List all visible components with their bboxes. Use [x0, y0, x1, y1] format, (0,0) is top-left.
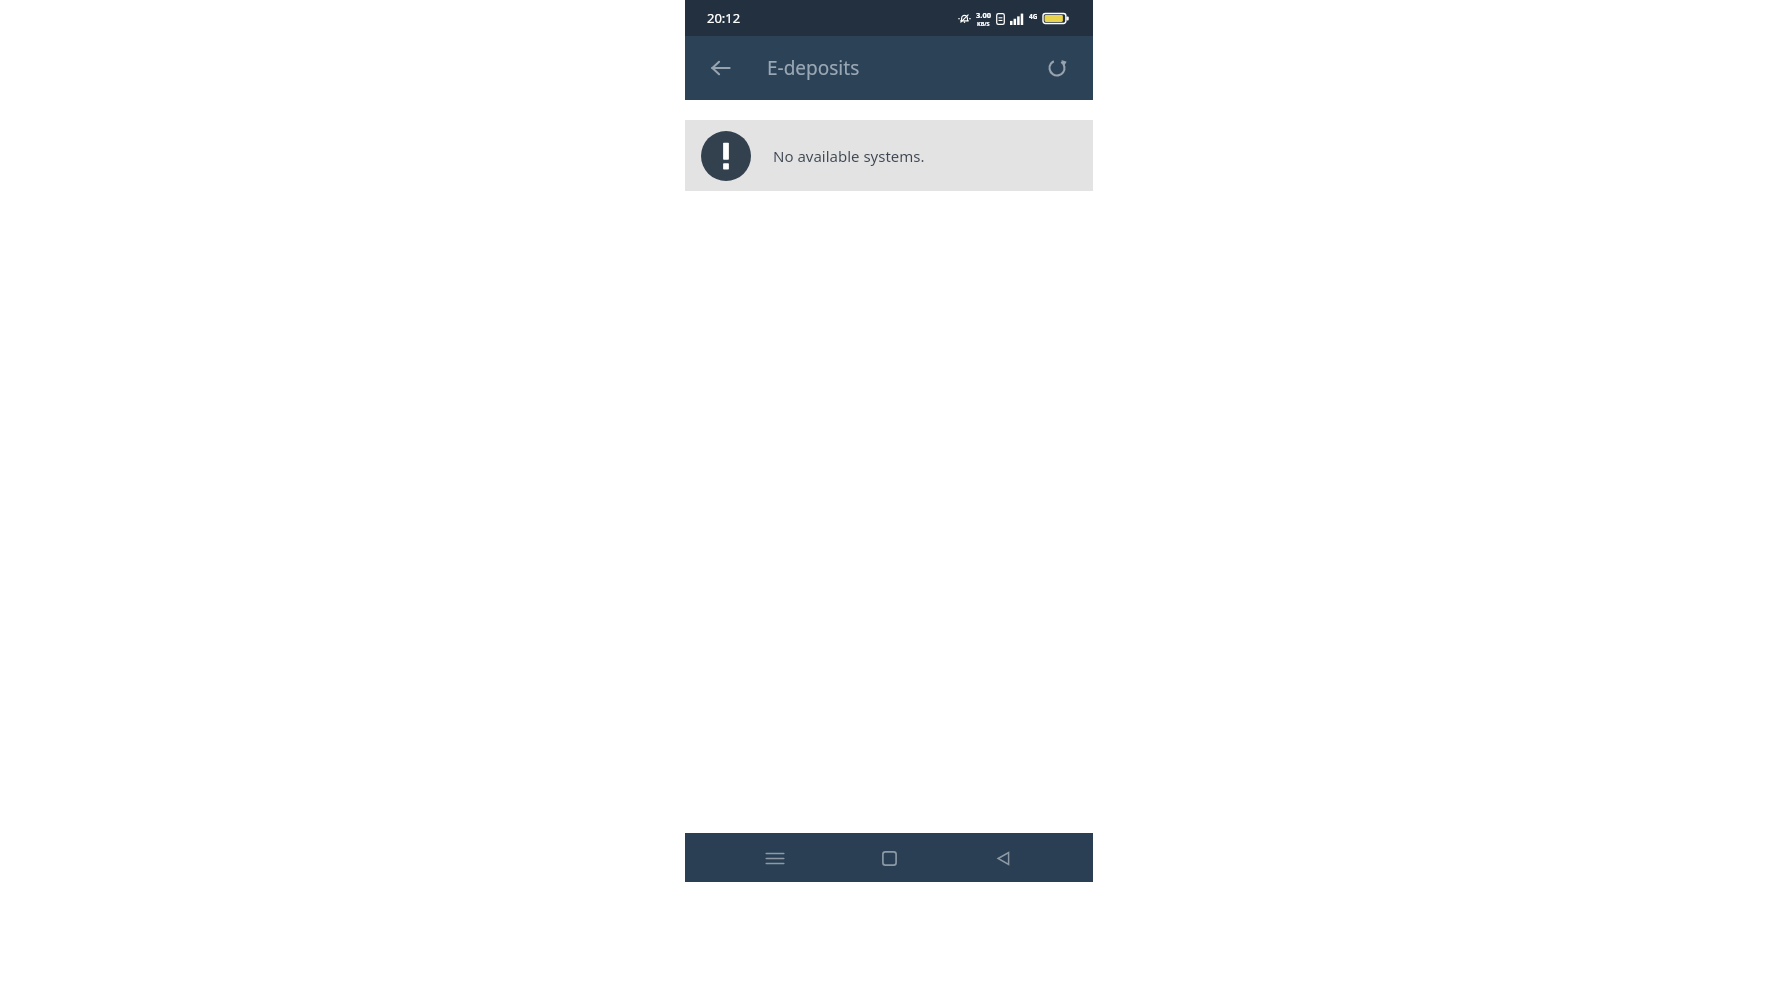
- button[interactable]: Recent apps: [751, 834, 799, 882]
- staticText: KB/S: [977, 20, 990, 27]
- button[interactable]: Back: [701, 48, 741, 88]
- staticText: 20:12: [707, 9, 741, 27]
- button[interactable]: No available systems.: [685, 120, 1093, 191]
- button[interactable]: Refresh: [1037, 48, 1077, 88]
- staticText: 4G: [1029, 12, 1038, 21]
- staticText: E-deposits: [767, 55, 860, 81]
- button[interactable]: Back: [979, 834, 1027, 882]
- staticText: No available systems.: [773, 146, 925, 166]
- staticText: 3.00: [976, 10, 991, 20]
- button[interactable]: Home: [865, 834, 913, 882]
